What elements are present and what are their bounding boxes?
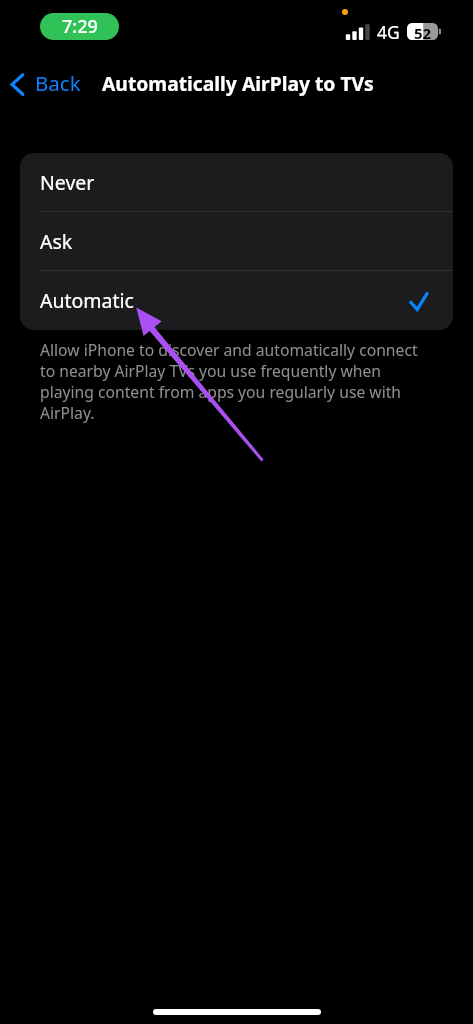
staticText: 7:29	[62, 14, 98, 39]
other: Selected	[409, 291, 429, 311]
staticText: Automatic	[40, 287, 134, 314]
button[interactable]: Return to call, 7:29	[40, 13, 119, 40]
button[interactable]: Never	[20, 153, 453, 212]
staticText: Back	[35, 69, 81, 97]
staticText: Never	[40, 169, 95, 196]
button[interactable]: Automatic	[20, 271, 453, 330]
other: Cellular signal	[345, 23, 370, 40]
staticText: Ask	[40, 228, 73, 255]
button[interactable]: Ask	[20, 212, 453, 271]
staticText: 4G	[377, 20, 400, 44]
button[interactable]: Back	[0, 65, 91, 105]
other: Battery 52 percent	[407, 23, 441, 40]
staticText: Automatically AirPlay to TVs	[102, 70, 374, 96]
other: Back	[10, 73, 24, 96]
staticText: 52	[414, 23, 432, 40]
staticText: Allow iPhone to discover and automatical…	[40, 339, 425, 423]
